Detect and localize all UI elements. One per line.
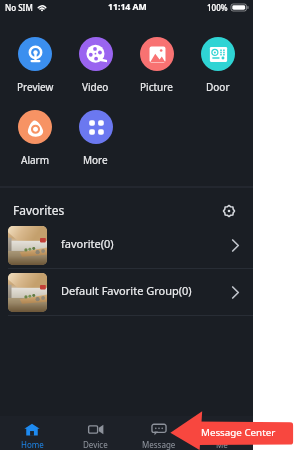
button[interactable]: Picture xyxy=(126,20,187,93)
staticText: Device xyxy=(83,439,108,450)
staticText: Message Center xyxy=(201,426,276,439)
staticText: Preview xyxy=(17,80,54,93)
staticText: Video xyxy=(82,80,109,93)
button[interactable]: Me xyxy=(190,416,253,450)
staticText: 100% xyxy=(207,2,228,13)
button[interactable]: Alarm xyxy=(5,93,65,166)
button[interactable]: Message xyxy=(127,416,190,450)
staticText: Door xyxy=(206,80,230,93)
staticText: Favorites xyxy=(13,202,65,218)
staticText: Me xyxy=(216,439,228,450)
staticText: More xyxy=(83,153,108,166)
staticText: 11:14 AM xyxy=(108,1,147,13)
staticText: Default Favorite Group(0) xyxy=(61,283,192,298)
staticText: Alarm xyxy=(21,153,50,166)
button[interactable]: Favorites settings xyxy=(218,200,240,222)
button[interactable]: Preview xyxy=(5,20,65,93)
staticText: Picture xyxy=(140,80,173,93)
staticText: Message xyxy=(142,439,176,450)
button[interactable]: Video xyxy=(65,20,126,93)
button[interactable]: Home xyxy=(0,416,64,450)
button[interactable]: Device xyxy=(64,416,127,450)
staticText: No SIM xyxy=(5,2,33,13)
button[interactable]: Door xyxy=(187,20,248,93)
button[interactable]: Default Favorite Group(0) xyxy=(0,269,253,316)
button[interactable]: More xyxy=(65,93,126,166)
button[interactable]: favorite(0) xyxy=(0,222,253,269)
staticText: Home xyxy=(21,439,44,450)
staticText: favorite(0) xyxy=(61,236,114,251)
